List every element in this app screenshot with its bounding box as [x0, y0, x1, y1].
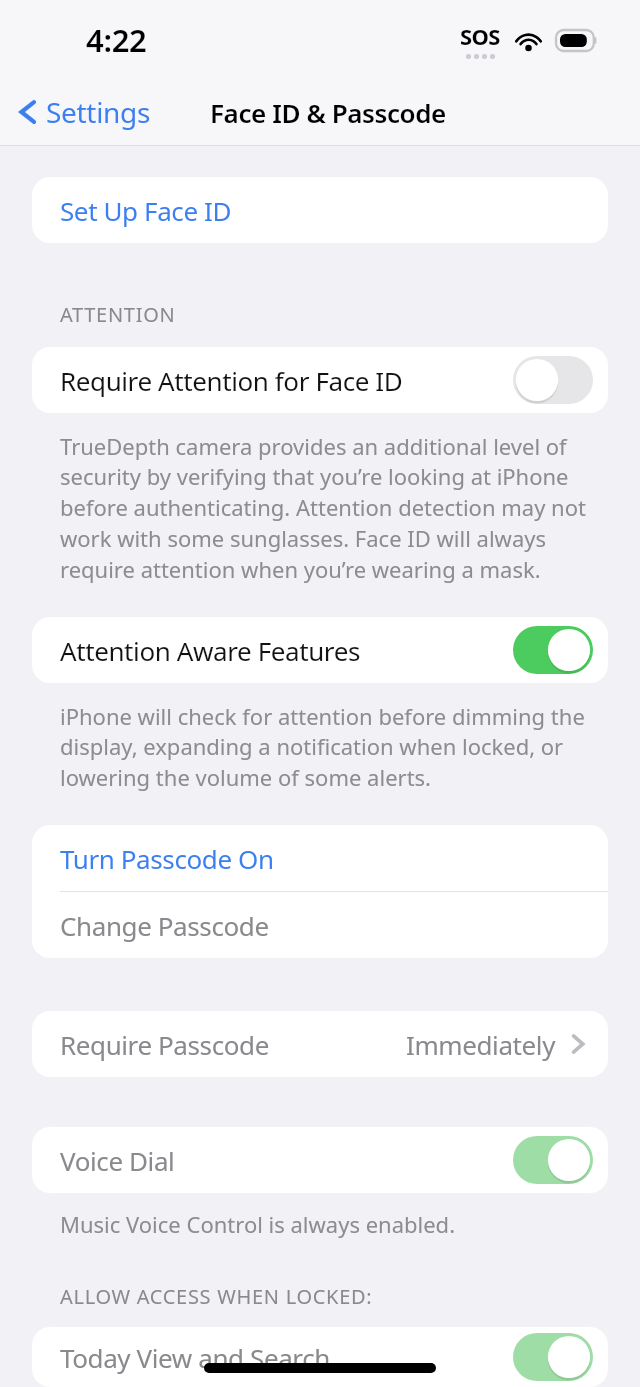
button[interactable]: Voice Dial: [510, 1134, 596, 1186]
staticText: Settings: [46, 93, 151, 131]
staticText: Require Attention for Face ID: [60, 363, 510, 398]
staticText: 4:22: [86, 19, 147, 61]
staticText: SOS: [460, 21, 500, 51]
staticText: TrueDepth camera provides an additional …: [60, 431, 604, 585]
staticText: ATTENTION: [60, 301, 608, 328]
button[interactable]: Change Passcode: [32, 892, 608, 958]
button[interactable]: Require Passcode: [32, 1011, 608, 1077]
button[interactable]: Voice Dial: [32, 1127, 608, 1193]
button[interactable]: Attention Aware Features: [32, 617, 608, 683]
button[interactable]: Require Attention for Face ID: [32, 347, 608, 413]
button[interactable]: Require Attention for Face ID: [510, 354, 596, 406]
staticText: Voice Dial: [60, 1143, 510, 1178]
staticText: Today View and Search: [60, 1340, 510, 1375]
staticText: Change Passcode: [60, 908, 586, 943]
staticText: Attention Aware Features: [60, 633, 510, 668]
button[interactable]: Attention Aware Features: [510, 624, 596, 676]
button[interactable]: Set Up Face ID: [32, 177, 608, 243]
button[interactable]: Today View and Search: [32, 1327, 608, 1387]
staticText: Face ID & Passcode: [210, 95, 446, 130]
button[interactable]: Today View and Search: [510, 1331, 596, 1383]
staticText: Require Passcode: [60, 1027, 406, 1062]
button[interactable]: Settings: [12, 85, 157, 139]
staticText: Turn Passcode On: [60, 841, 586, 876]
staticText: Immediately: [406, 1027, 556, 1062]
button[interactable]: Turn Passcode On: [32, 825, 608, 891]
staticText: Set Up Face ID: [60, 193, 586, 228]
staticText: iPhone will check for attention before d…: [60, 701, 604, 793]
staticText: Music Voice Control is always enabled.: [60, 1209, 604, 1239]
staticText: ALLOW ACCESS WHEN LOCKED:: [60, 1283, 608, 1310]
